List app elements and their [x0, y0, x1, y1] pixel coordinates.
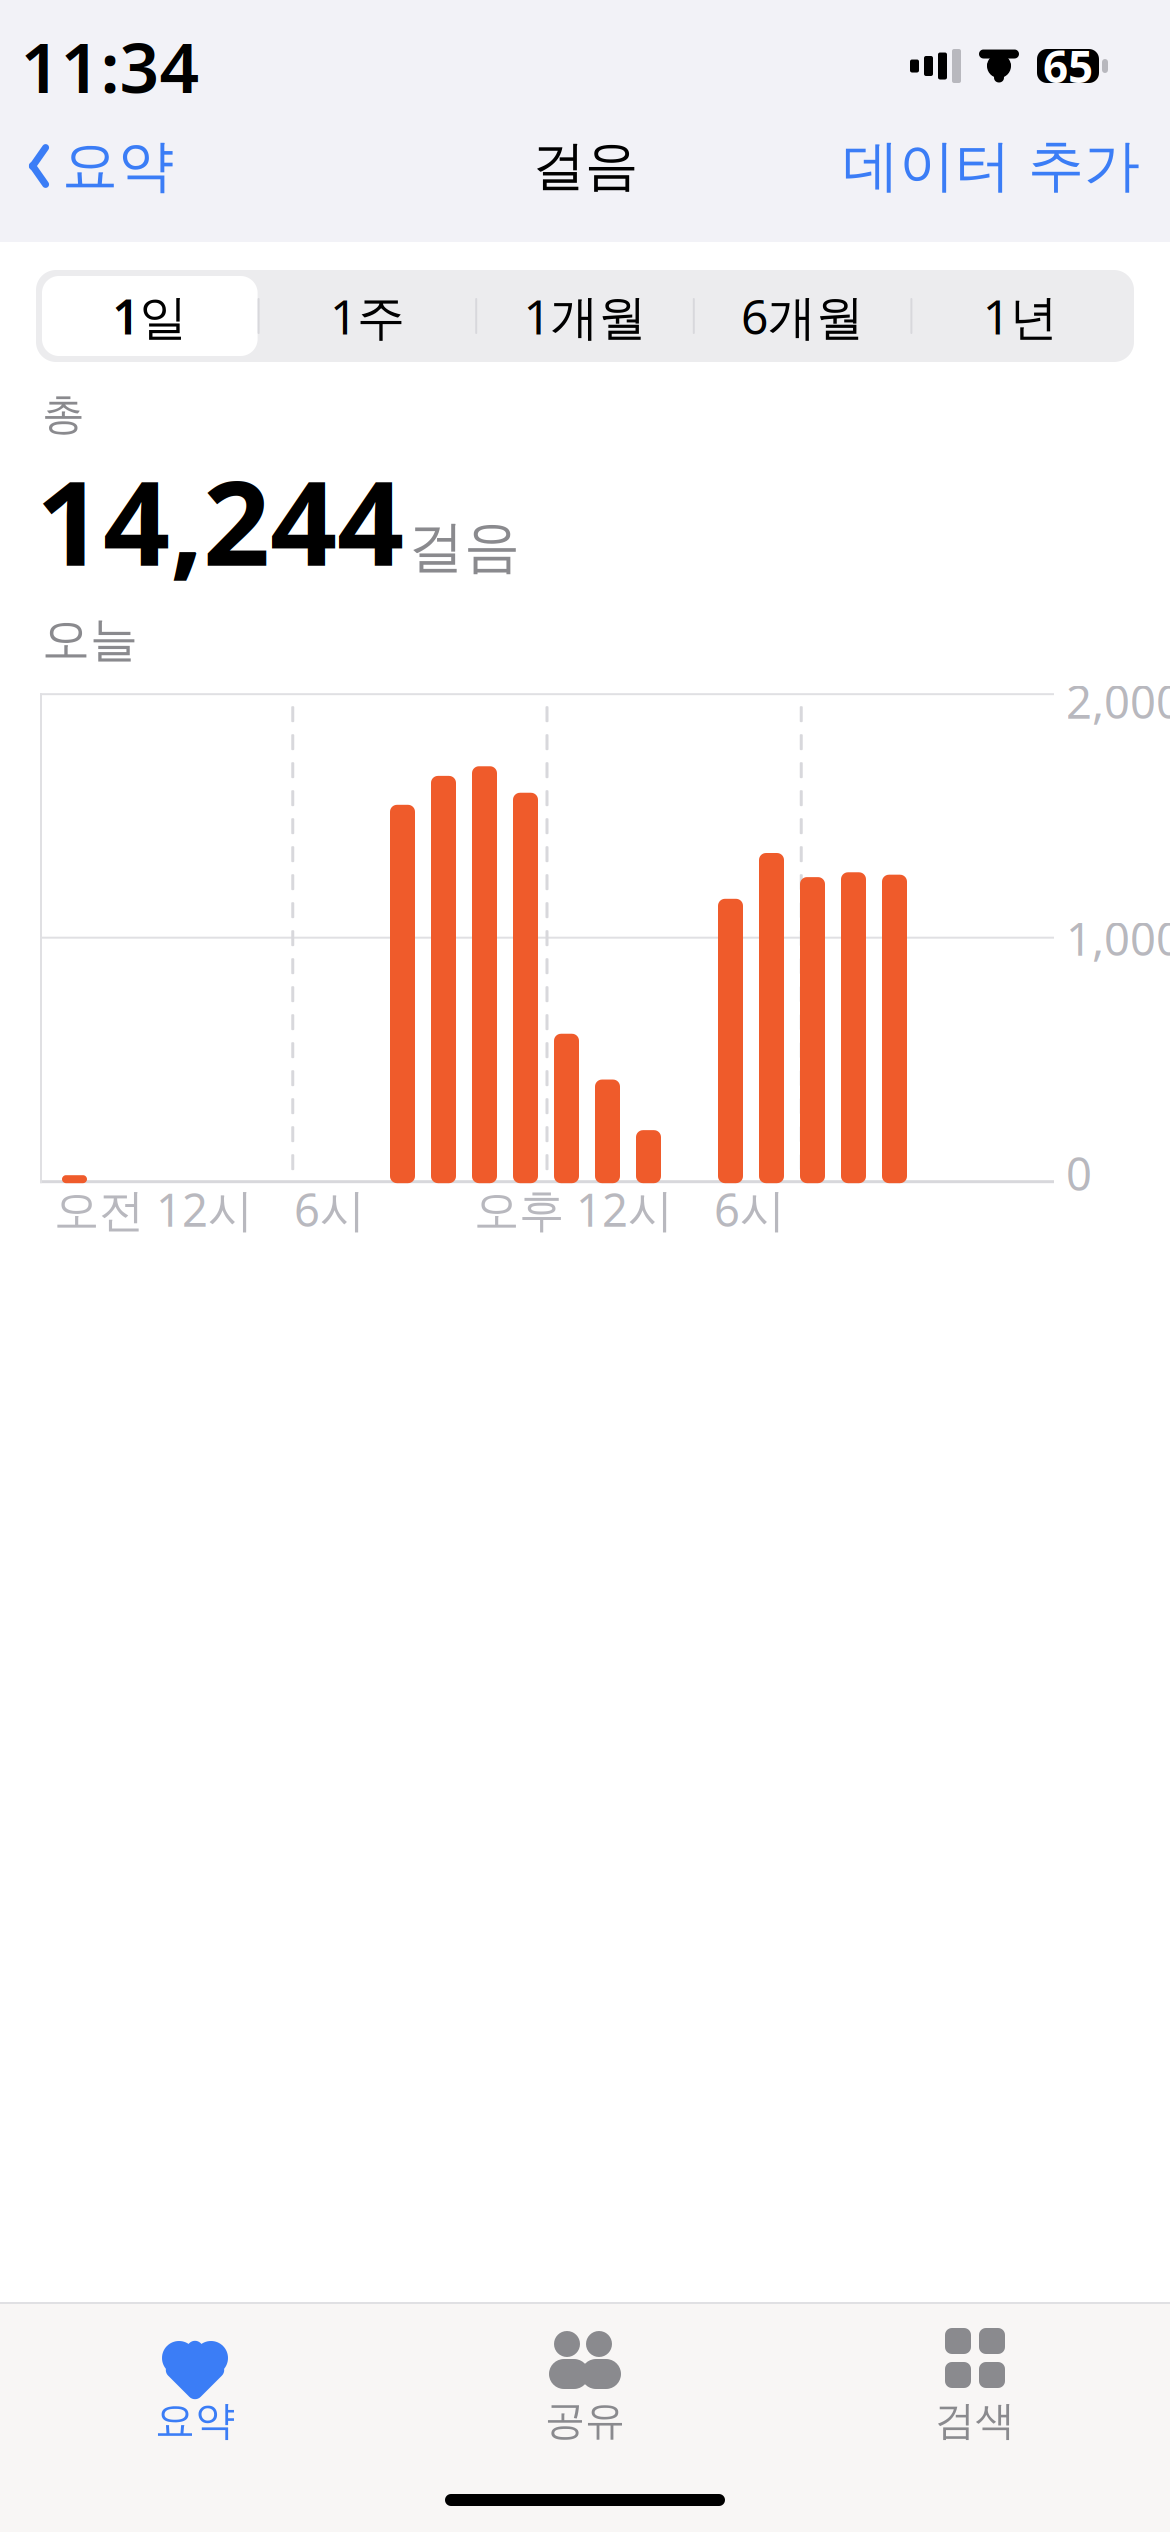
staticText: 걸음 [408, 513, 520, 582]
staticText: 데이터 추가 [843, 132, 1140, 200]
button[interactable]: 1일 [42, 276, 258, 356]
staticText: 14,244 [36, 442, 404, 598]
button[interactable]: 1주 [260, 276, 475, 356]
staticText: 총 [42, 388, 85, 440]
staticText: 걸음 [532, 133, 638, 199]
staticText: 요약 [62, 132, 174, 200]
staticText: 1주 [330, 284, 405, 348]
button[interactable]: 1개월 [477, 276, 693, 356]
button[interactable]: 6개월 [695, 276, 910, 356]
button[interactable]: 1년 [912, 276, 1128, 356]
button[interactable]: 요약 [0, 2322, 390, 2451]
staticText: 6시 [294, 1179, 365, 1239]
staticText: 공유 [545, 2396, 625, 2445]
staticText: 2,000 [1066, 671, 1170, 731]
staticText: 1년 [983, 284, 1058, 348]
button[interactable]: 요약 [0, 118, 174, 214]
staticText: 65 [1043, 37, 1093, 95]
staticText: 오늘 [42, 610, 138, 669]
staticText: 6개월 [741, 284, 864, 348]
staticText: 오후 12시 [474, 1179, 673, 1239]
button[interactable]: 검색 [780, 2322, 1170, 2451]
button[interactable]: 데이터 추가 [843, 118, 1170, 214]
staticText: 요약 [155, 2396, 235, 2445]
staticText: 0 [1066, 1143, 1092, 1203]
staticText: 1일 [112, 284, 187, 348]
staticText: 11:34 [20, 20, 199, 112]
staticText: 6시 [714, 1179, 785, 1239]
staticText: 1개월 [523, 284, 646, 348]
staticText: 오전 12시 [54, 1179, 253, 1239]
staticText: 검색 [935, 2396, 1015, 2445]
staticText: 1,000 [1066, 908, 1170, 968]
button[interactable]: 공유 [390, 2322, 780, 2451]
